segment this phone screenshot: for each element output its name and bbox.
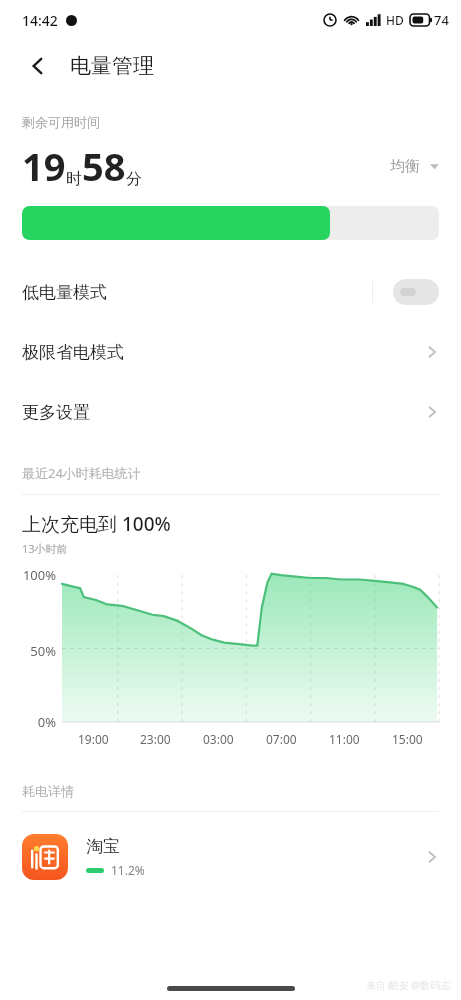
staticText: 更多设置 — [22, 402, 90, 423]
staticText: 来自 酷安 @数码志 — [366, 978, 451, 992]
staticText: 03:00 — [203, 731, 234, 747]
staticText: 淘宝 — [86, 836, 120, 857]
staticText: 15:00 — [392, 731, 423, 747]
button[interactable]: 极限省电模式 — [0, 322, 461, 382]
staticText: 时 — [66, 169, 82, 189]
staticText: 极限省电模式 — [22, 342, 124, 363]
staticText: 上次充电到 100% — [22, 511, 171, 537]
staticText: 0% — [8, 713, 56, 731]
button[interactable]: 淘宝 — [0, 826, 461, 888]
staticText: 58 — [82, 140, 126, 192]
staticText: 耗电详情 — [22, 783, 74, 799]
staticText: 11.2% — [111, 862, 145, 878]
button[interactable]: 均衡 — [390, 157, 439, 176]
staticText: 19 — [22, 140, 66, 192]
staticText: 100% — [8, 566, 56, 584]
button[interactable]: Toggle 低电量模式 — [393, 279, 439, 305]
staticText: 50% — [8, 642, 56, 660]
staticText: 19:00 — [78, 731, 109, 747]
staticText: 剩余可用时间 — [22, 114, 100, 130]
staticText: HD — [386, 12, 404, 28]
staticText: 电量管理 — [70, 53, 154, 79]
button[interactable]: 低电量模式 — [0, 262, 461, 322]
button[interactable]: 更多设置 — [0, 382, 461, 442]
staticText: 均衡 — [390, 157, 420, 176]
staticText: 最近24小时耗电统计 — [22, 464, 141, 482]
staticText: 11:00 — [329, 731, 360, 747]
staticText: 07:00 — [266, 731, 297, 747]
staticText: 13小时前 — [22, 541, 68, 556]
staticText: 14:42 — [22, 11, 58, 30]
staticText: 分 — [126, 169, 142, 189]
staticText: 23:00 — [140, 731, 171, 747]
staticText: 低电量模式 — [22, 282, 107, 303]
staticText: 74 — [434, 11, 449, 29]
button[interactable]: Back — [20, 48, 56, 84]
